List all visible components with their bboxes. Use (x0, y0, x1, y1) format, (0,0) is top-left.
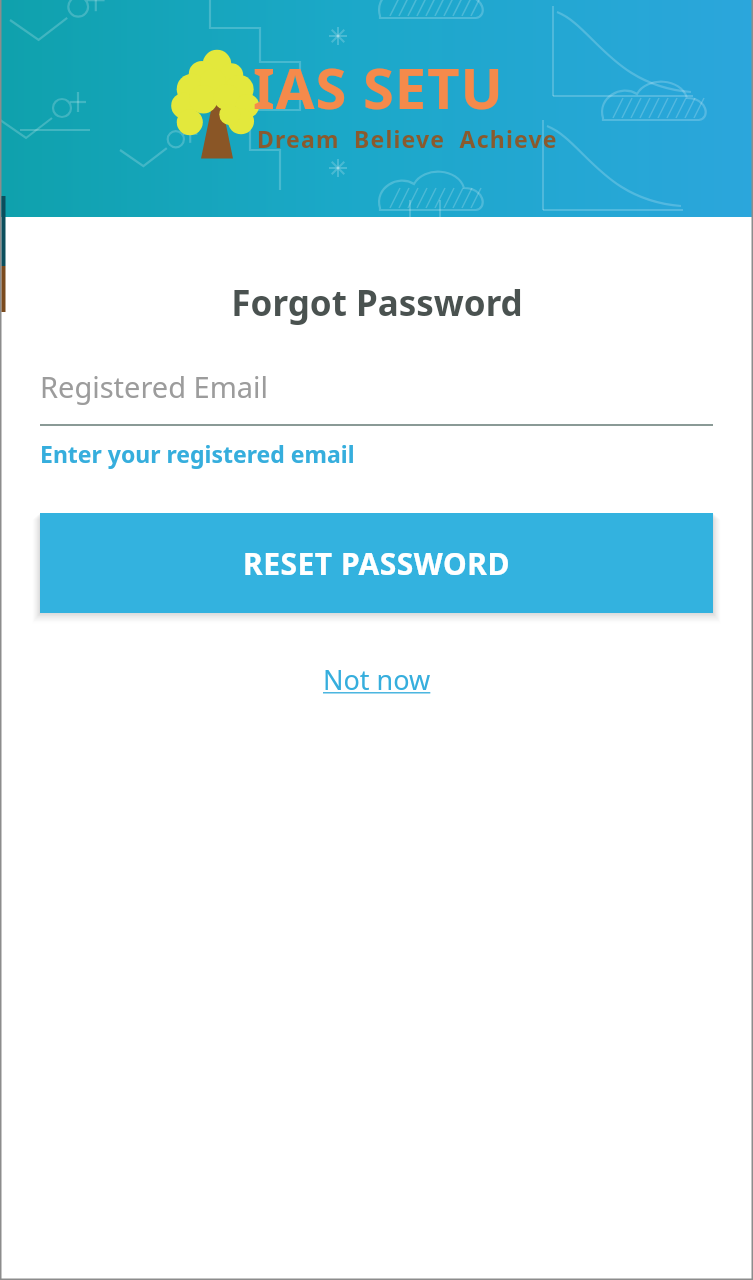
staticText: Enter your registered email (40, 438, 355, 469)
staticText: Not now (323, 661, 431, 698)
staticText: Dream Believe Achieve (257, 123, 558, 154)
button[interactable]: RESET PASSWORD (40, 513, 713, 613)
button[interactable]: Registered Email (40, 367, 713, 426)
staticText: RESET PASSWORD (243, 543, 510, 584)
staticText: Registered Email (40, 367, 269, 406)
staticText: IAS SETU (253, 49, 504, 125)
staticText: Forgot Password (231, 279, 523, 327)
button[interactable]: Not now (305, 655, 449, 704)
